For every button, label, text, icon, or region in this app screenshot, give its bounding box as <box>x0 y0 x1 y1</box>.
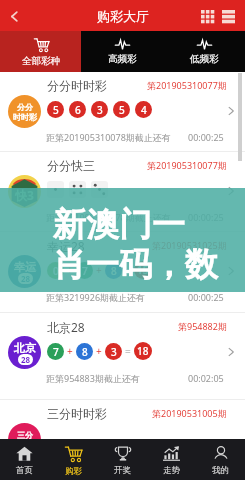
staticText: 首页 <box>16 465 33 476</box>
button[interactable]: 走势 <box>147 439 196 480</box>
staticText: 走势 <box>163 465 180 476</box>
staticText: 分分 <box>17 102 33 112</box>
staticText: 18 <box>137 344 149 358</box>
staticText: 距第3219926期截止还有 <box>46 291 146 303</box>
staticText: 开奖 <box>114 465 131 476</box>
button[interactable]: Back <box>0 2 28 30</box>
staticText: 5 <box>119 103 125 117</box>
staticText: 距第201905310078期截止还有 <box>46 131 171 143</box>
staticText: 15 <box>137 263 149 277</box>
staticText: 28 <box>21 354 31 365</box>
button[interactable]: 高频彩 <box>81 31 163 72</box>
staticText: 4 <box>141 103 147 117</box>
staticText: 第20190531005期 <box>152 407 227 419</box>
staticText: 8 <box>82 345 88 359</box>
staticText: + <box>96 263 102 277</box>
staticText: 0 <box>53 264 59 278</box>
button[interactable]: Grid view <box>197 6 217 26</box>
staticText: 7 <box>82 264 88 278</box>
staticText: 北京 <box>14 341 36 355</box>
button[interactable]: 开奖 <box>98 439 147 480</box>
staticText: + <box>67 344 73 358</box>
staticText: 全部彩种 <box>22 55 60 67</box>
staticText: 28 <box>21 273 31 284</box>
staticText: 00:00:25 <box>188 291 224 303</box>
staticText: 我的 <box>212 465 229 476</box>
button[interactable]: 低频彩 <box>163 31 245 72</box>
staticText: 5 <box>53 103 59 117</box>
staticText: 幸运28 <box>47 238 85 254</box>
staticText: 第20190531025期 <box>152 239 227 251</box>
staticText: 快3 <box>15 187 34 203</box>
button[interactable]: 快3 <box>0 152 245 232</box>
staticText: 7 <box>53 345 59 359</box>
staticText: 00:00:25 <box>188 131 224 143</box>
button[interactable]: 我的 <box>196 439 245 480</box>
staticText: = <box>125 263 131 277</box>
staticText: 8 <box>111 264 117 278</box>
staticText: 00:02:05 <box>188 372 224 384</box>
button[interactable]: 三分 <box>0 400 245 439</box>
button[interactable]: 幸运 <box>0 232 245 313</box>
staticText: 6 <box>75 103 81 117</box>
staticText: 购彩 <box>65 466 82 477</box>
staticText: 三分时时彩 <box>47 406 107 421</box>
staticText: 高频彩 <box>108 53 137 65</box>
button[interactable]: Menu <box>218 6 238 26</box>
staticText: 第954882期 <box>178 320 227 332</box>
staticText: 时时彩 <box>13 112 37 122</box>
staticText: 三分 <box>17 430 33 440</box>
staticText: + <box>96 344 102 358</box>
button[interactable]: 首页 <box>0 439 49 480</box>
staticText: 购彩大厅 <box>97 8 149 24</box>
staticText: = <box>125 344 131 358</box>
staticText: 3 <box>97 103 103 117</box>
button[interactable]: 全部彩种 <box>0 31 81 72</box>
staticText: 新澳门一 肖一码，数 <box>53 204 218 286</box>
staticText: 北京28 <box>47 319 85 335</box>
button[interactable]: 分分 <box>0 72 245 152</box>
staticText: 距第201905310078期截止还有 <box>46 211 171 223</box>
staticText: 低频彩 <box>190 53 219 65</box>
staticText: 幸运 <box>14 260 36 274</box>
staticText: 第201905310077期 <box>147 79 227 91</box>
staticText: 3 <box>111 345 117 359</box>
button[interactable]: 购彩 <box>49 439 98 480</box>
staticText: 00:00:25 <box>188 211 224 223</box>
staticText: 第201905310077期 <box>147 159 227 171</box>
staticText: 分分快三 <box>47 158 95 173</box>
staticText: + <box>67 263 73 277</box>
staticText: 时时彩 <box>13 440 37 450</box>
staticText: 分分时时彩 <box>47 78 107 93</box>
staticText: 距第954883期截止还有 <box>46 372 140 384</box>
button[interactable]: 北京 <box>0 313 245 400</box>
